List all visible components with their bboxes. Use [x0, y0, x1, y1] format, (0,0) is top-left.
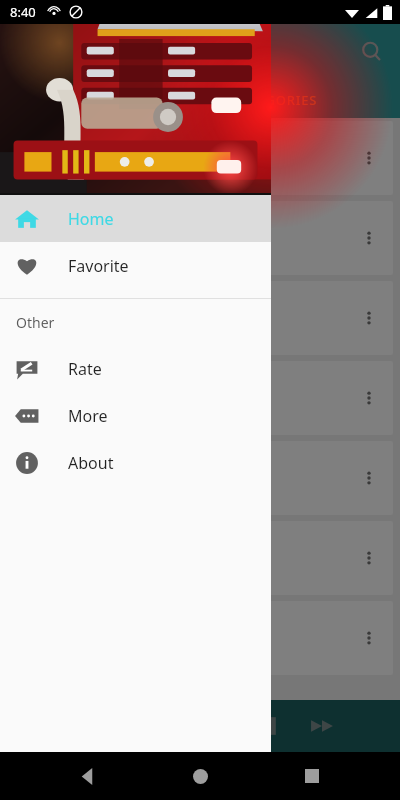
button[interactable]: Home	[0, 195, 271, 242]
button[interactable]: More options	[7, 601, 393, 675]
staticText: More	[68, 405, 108, 427]
button[interactable]: More options	[7, 281, 393, 355]
button[interactable]: More options	[351, 620, 387, 656]
button[interactable]: Home	[180, 756, 220, 796]
button[interactable]: More options	[351, 220, 387, 256]
button[interactable]: Favorite	[0, 242, 271, 289]
button[interactable]: Search	[352, 32, 392, 72]
button[interactable]: Departments	[7, 361, 393, 435]
staticText: CATEGORIES	[232, 91, 318, 109]
button[interactable]: More options	[351, 300, 387, 336]
button[interactable]: More options	[7, 441, 393, 515]
button[interactable]: More options	[7, 521, 393, 595]
button[interactable]: More options	[351, 540, 387, 576]
staticText: Favorite	[68, 255, 129, 277]
button[interactable]: Pause	[247, 705, 289, 747]
button[interactable]: CATEGORIES	[232, 84, 318, 116]
staticText: Washington	[21, 211, 112, 233]
staticText: Departments	[21, 371, 121, 393]
button[interactable]: Fast forward	[301, 705, 343, 747]
button[interactable]: Rate	[0, 345, 271, 392]
staticText: Home	[68, 208, 114, 230]
button[interactable]: More	[0, 392, 271, 439]
staticText: Rate	[68, 358, 102, 380]
button[interactable]: More options	[351, 380, 387, 416]
button[interactable]: Back	[68, 756, 108, 796]
button[interactable]: Recent apps	[292, 756, 332, 796]
staticText: Other	[16, 313, 55, 332]
staticText: Fire and	[21, 131, 82, 153]
button[interactable]: More options	[351, 140, 387, 176]
staticText: About	[68, 452, 114, 474]
staticText: 8:40	[10, 3, 36, 21]
button[interactable]: Washington	[7, 201, 393, 275]
button[interactable]: About	[0, 439, 271, 486]
button[interactable]: More options	[351, 460, 387, 496]
button[interactable]: Fire and	[7, 121, 393, 195]
